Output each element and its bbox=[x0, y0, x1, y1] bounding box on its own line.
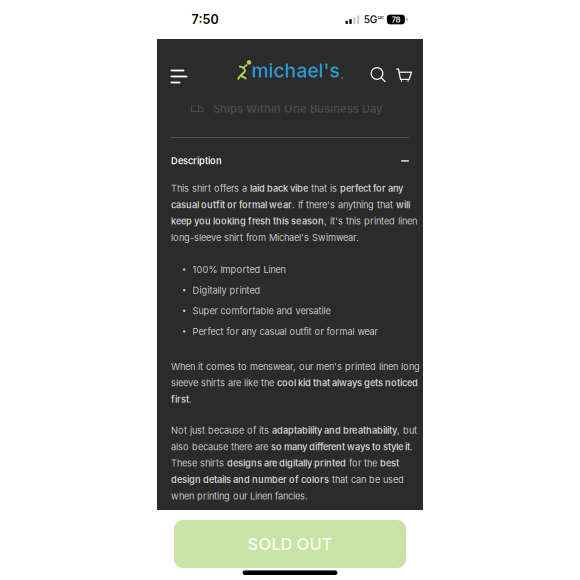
staticText: When it comes to menswear, our men's pri… bbox=[171, 361, 420, 405]
staticText: uc bbox=[378, 14, 384, 20]
staticText: michael's bbox=[251, 59, 339, 82]
staticText: SOLD OUT bbox=[247, 534, 332, 554]
staticText: 78 bbox=[391, 15, 400, 24]
button[interactable]: SOLD OUT bbox=[174, 520, 406, 568]
staticText: 100% Imported Linen bbox=[192, 264, 285, 275]
staticText: Perfect for any casual outfit or formal … bbox=[192, 326, 377, 337]
staticText: Digitally printed bbox=[192, 285, 260, 296]
staticText: 7:50 bbox=[191, 12, 218, 27]
button[interactable]: Menu bbox=[162, 58, 194, 90]
button[interactable]: Description bbox=[157, 152, 423, 170]
button[interactable]: Shopping cart bbox=[391, 59, 421, 89]
staticText: 5G bbox=[364, 13, 378, 26]
button[interactable]: Search bbox=[361, 59, 391, 89]
staticText: Description bbox=[171, 155, 222, 166]
staticText: This shirt offers a laid back vibe that … bbox=[171, 183, 417, 243]
staticText: Ships Within One Business Day bbox=[213, 102, 383, 115]
staticText: . bbox=[340, 67, 344, 82]
staticText: Super comfortable and versatile bbox=[192, 305, 330, 316]
staticText: Not just because of its adaptability and… bbox=[171, 425, 417, 502]
